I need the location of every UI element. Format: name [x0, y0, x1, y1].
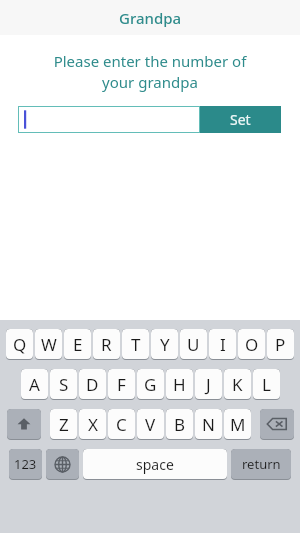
staticText: P [275, 333, 286, 356]
button[interactable]: J [195, 369, 222, 400]
button[interactable]: T [122, 329, 149, 360]
button[interactable]: R [93, 329, 120, 360]
staticText: G [144, 373, 157, 396]
button[interactable]: B [166, 409, 193, 440]
staticText: V [145, 413, 156, 436]
staticText: T [131, 333, 141, 356]
staticText: M [230, 413, 246, 436]
button[interactable]: M [224, 409, 251, 440]
staticText: E [73, 333, 83, 356]
button[interactable]: Y [151, 329, 178, 360]
button[interactable]: U [180, 329, 207, 360]
button[interactable]: L [253, 369, 280, 400]
button[interactable]: S [50, 369, 77, 400]
button[interactable]: 123 [9, 449, 42, 480]
staticText: Z [59, 413, 69, 436]
button[interactable]: Z [50, 409, 77, 440]
button[interactable]: Set [200, 106, 281, 133]
staticText: Y [160, 333, 170, 356]
button[interactable]: X [79, 409, 106, 440]
button[interactable]: D [79, 369, 106, 400]
staticText: Q [13, 333, 27, 356]
staticText: return [242, 455, 281, 473]
button[interactable]: space [83, 449, 227, 480]
staticText: X [88, 413, 98, 436]
staticText: U [187, 333, 200, 356]
button[interactable]: F [108, 369, 135, 400]
staticText: A [29, 373, 40, 396]
staticText: S [59, 373, 69, 396]
staticText: Grandpa [119, 8, 182, 28]
staticText: D [86, 373, 99, 396]
button[interactable]: Q [6, 329, 33, 360]
button[interactable]: W [35, 329, 62, 360]
staticText: 123 [14, 455, 37, 473]
button[interactable]: return [231, 449, 291, 480]
button[interactable]: V [137, 409, 164, 440]
button[interactable]: H [166, 369, 193, 400]
staticText: L [262, 373, 271, 396]
button[interactable]: Switch keyboard [46, 449, 79, 480]
button[interactable]: A [21, 369, 48, 400]
staticText: Please enter the number of your grandpa [12, 51, 288, 93]
button[interactable] [18, 106, 200, 133]
button[interactable]: G [137, 369, 164, 400]
button[interactable]: C [108, 409, 135, 440]
staticText: I [220, 333, 226, 356]
staticText: Set [230, 110, 251, 129]
button[interactable]: N [195, 409, 222, 440]
button[interactable]: O [238, 329, 265, 360]
staticText: O [245, 333, 259, 356]
staticText: W [41, 333, 57, 356]
button[interactable]: E [64, 329, 91, 360]
staticText: C [116, 413, 127, 436]
button[interactable]: I [209, 329, 236, 360]
button[interactable]: Shift [7, 409, 41, 440]
staticText: H [173, 373, 186, 396]
staticText: B [174, 413, 186, 436]
button[interactable]: Backspace [260, 409, 294, 440]
staticText: space [136, 455, 174, 474]
staticText: F [117, 373, 126, 396]
staticText: N [202, 413, 215, 436]
button[interactable]: P [267, 329, 294, 360]
button[interactable]: K [224, 369, 251, 400]
staticText: K [232, 373, 243, 396]
staticText: J [206, 373, 211, 396]
staticText: R [101, 333, 112, 356]
